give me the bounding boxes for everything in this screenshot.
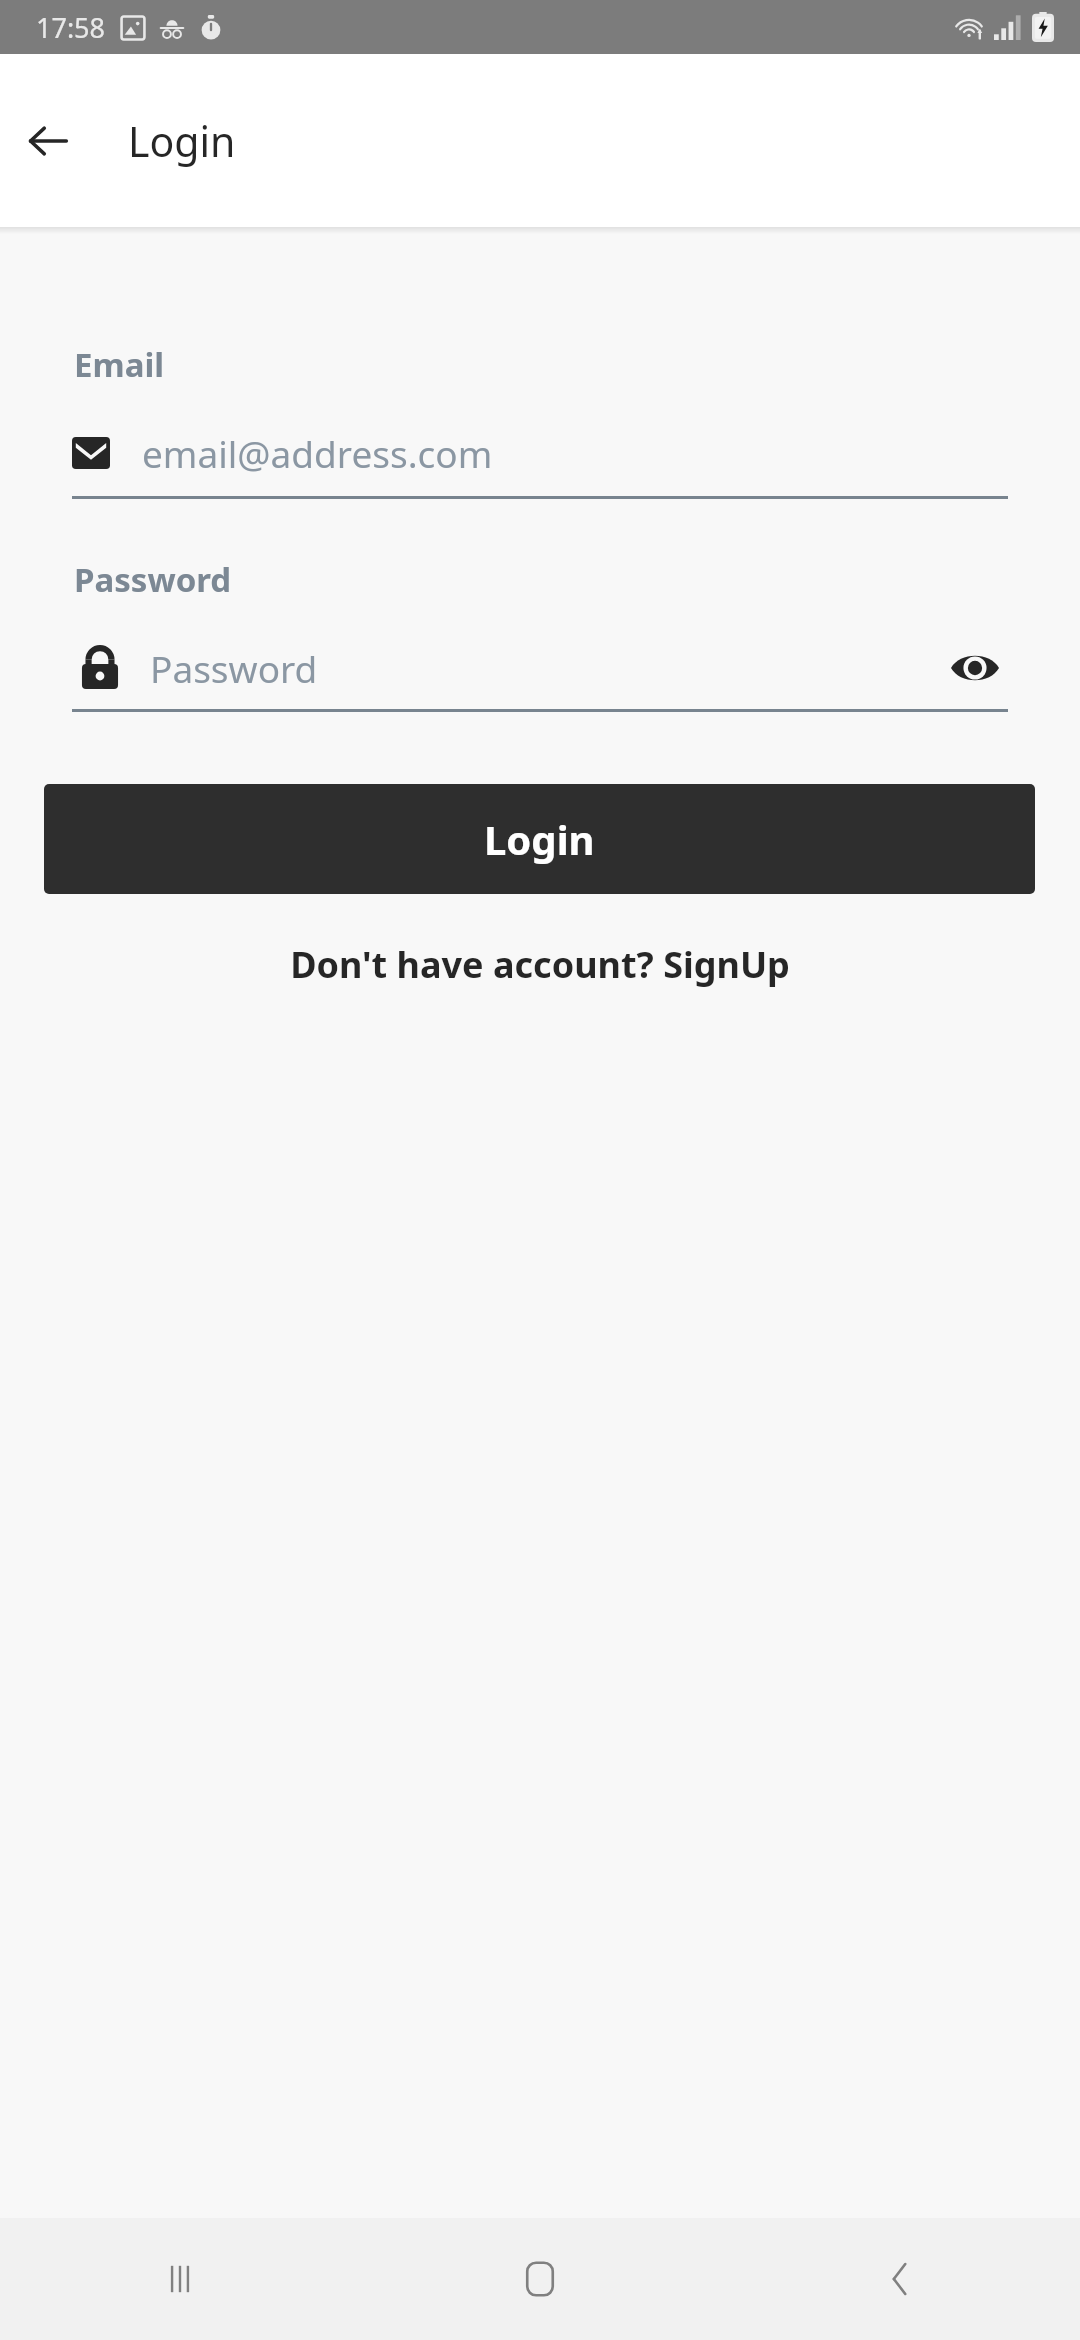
staticText: email@address.com — [142, 428, 493, 478]
staticText: 17:58 — [36, 9, 106, 46]
button[interactable]: Back — [12, 105, 84, 177]
staticText: Login — [128, 113, 236, 169]
staticText: Password — [150, 643, 318, 693]
button[interactable]: email@address.com — [72, 420, 1008, 486]
staticText: Login — [484, 812, 595, 866]
staticText: Don't have account? SignUp — [290, 940, 790, 989]
button[interactable]: Back — [720, 2218, 1080, 2340]
button[interactable]: Login — [44, 784, 1035, 894]
button[interactable]: Don't have account? SignUp — [280, 934, 800, 995]
staticText: Email — [74, 342, 165, 387]
button[interactable]: Password — [72, 643, 942, 693]
button[interactable]: Home — [360, 2218, 720, 2340]
button[interactable]: Recent apps — [0, 2218, 360, 2340]
staticText: Password — [74, 557, 232, 602]
button[interactable]: Show password — [942, 635, 1008, 701]
